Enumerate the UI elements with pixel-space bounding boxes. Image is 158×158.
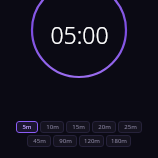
button[interactable]: 45m [27,135,51,147]
button[interactable]: 180m [106,135,131,147]
button[interactable]: 20m [92,121,116,133]
staticText: 15m [72,123,85,131]
staticText: 5m [22,123,32,131]
button[interactable]: 120m [79,135,104,147]
staticText: 10m [46,123,59,131]
staticText: 180m [111,137,127,145]
staticText: 90m [59,137,72,145]
button[interactable]: 25m [118,121,142,133]
button[interactable]: 15m [66,121,90,133]
button[interactable]: Timer progress [0,0,158,86]
staticText: 20m [98,123,111,131]
button[interactable]: 90m [53,135,77,147]
button[interactable]: 5m [16,121,38,133]
staticText: 45m [33,137,46,145]
staticText: 05:00 [50,19,109,50]
button[interactable]: 10m [40,121,64,133]
staticText: 25m [124,123,137,131]
staticText: 120m [84,137,100,145]
